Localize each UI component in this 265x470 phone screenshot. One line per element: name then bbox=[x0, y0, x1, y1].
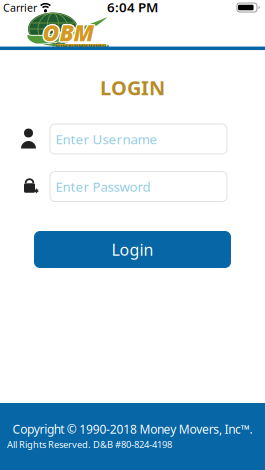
staticText: OBM bbox=[42, 17, 94, 47]
staticText: OBM bbox=[42, 16, 94, 46]
staticText: OBM bbox=[42, 16, 94, 47]
staticText: OBM bbox=[44, 17, 96, 47]
staticText: All Rights Reserved. D&B #80-824-4198 bbox=[7, 438, 172, 451]
staticText: OBM bbox=[43, 18, 95, 48]
staticText: LOGIN bbox=[100, 74, 165, 101]
staticText: Enter Password bbox=[55, 178, 150, 195]
staticText: Enter Username bbox=[55, 130, 157, 148]
staticText: 6:04 PM bbox=[107, 0, 158, 16]
staticText: OBM bbox=[42, 19, 94, 49]
staticText: Login bbox=[111, 239, 153, 260]
staticText: Carrier bbox=[3, 0, 37, 15]
staticText: Copyright © 1990-2018 Money Movers, Inc™… bbox=[13, 421, 252, 437]
staticText: OBM bbox=[41, 17, 93, 47]
staticText: OBM bbox=[43, 16, 95, 47]
staticText: OBM bbox=[42, 18, 94, 48]
staticText: ONLINE BUSINESS MANAGER bbox=[52, 44, 109, 49]
